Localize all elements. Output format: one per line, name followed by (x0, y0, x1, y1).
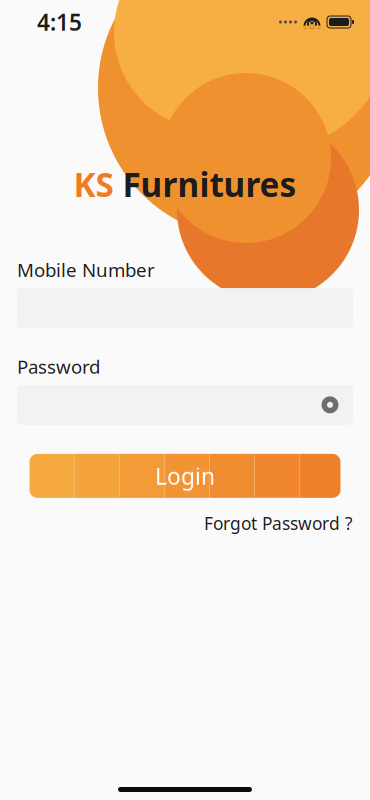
staticText: 4:15 (37, 7, 82, 37)
staticText: Password (17, 354, 100, 379)
staticText: Forgot Password ? (204, 512, 353, 535)
button[interactable] (17, 385, 353, 425)
staticText: Furnitures (113, 162, 296, 206)
button[interactable]: Login (29, 454, 340, 498)
button[interactable]: Forgot Password ? (204, 508, 353, 539)
staticText: KS (73, 162, 113, 206)
button[interactable]: Show password (319, 396, 341, 414)
staticText: Mobile Number (17, 257, 155, 282)
staticText: Login (155, 461, 215, 491)
